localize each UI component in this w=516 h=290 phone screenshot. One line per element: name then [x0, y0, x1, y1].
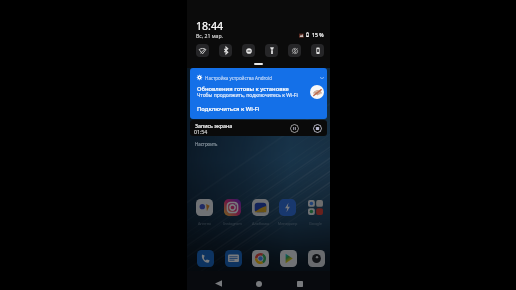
staticText: Instagram: [219, 221, 246, 226]
staticText: Настройка устройства Android: [205, 75, 273, 81]
staticText: Менеджер: [274, 221, 301, 226]
button[interactable]: Bluetooth: [219, 44, 232, 57]
button[interactable]: Настроить: [195, 141, 218, 147]
button[interactable]: Do not disturb: [242, 44, 255, 57]
button[interactable]: Battery saver: [311, 44, 324, 57]
staticText: Альбомы: [247, 221, 274, 226]
button[interactable]: Wi-Fi: [196, 44, 209, 57]
staticText: 18:44: [196, 19, 224, 33]
staticText: Агенты: [191, 221, 218, 226]
button[interactable]: Подключиться к Wi-Fi: [195, 104, 262, 114]
button[interactable]: Back: [208, 274, 228, 290]
button[interactable]: Stop: [313, 124, 322, 133]
button[interactable]: Auto-rotate: [288, 44, 301, 57]
button[interactable]: Home: [249, 274, 269, 290]
staticText: Подключиться к Wi-Fi: [197, 105, 260, 113]
staticText: Запись экрана: [195, 122, 233, 129]
staticText: 15 %: [312, 32, 324, 39]
button[interactable]: Recents: [290, 274, 310, 290]
button[interactable]: Flashlight: [265, 44, 278, 57]
staticText: Вс, 21 мар.: [196, 33, 223, 40]
button[interactable]: [196, 199, 213, 216]
staticText: 01:54: [194, 128, 208, 135]
button[interactable]: [224, 199, 241, 216]
staticText: Настроить: [195, 141, 218, 147]
button[interactable]: Запись экрана: [190, 120, 327, 136]
button[interactable]: Phone: [197, 250, 214, 267]
button[interactable]: Play Store: [280, 250, 297, 267]
staticText: Чтобы продолжить, подключитесь к Wi-Fi: [197, 92, 298, 99]
button[interactable]: Chrome: [252, 250, 269, 267]
button[interactable]: Pause: [290, 124, 299, 133]
button[interactable]: [279, 199, 296, 216]
button[interactable]: Настройка устройства Android: [190, 68, 327, 119]
button[interactable]: [252, 199, 269, 216]
button[interactable]: [307, 199, 324, 216]
staticText: Обновления готовы к установке: [197, 85, 289, 93]
staticText: Google: [302, 221, 329, 226]
button[interactable]: Messages: [225, 250, 242, 267]
button[interactable]: Camera: [308, 250, 325, 267]
